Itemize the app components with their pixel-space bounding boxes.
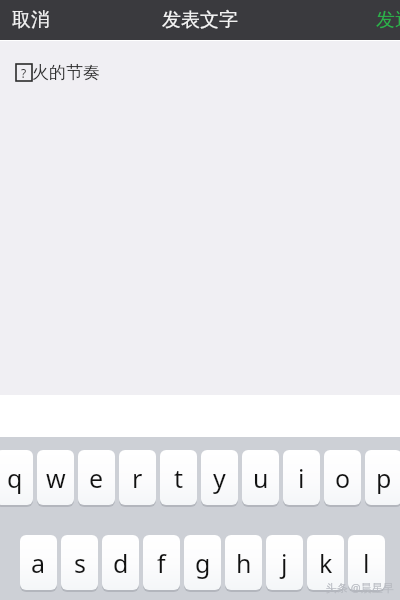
staticText: ?: [21, 65, 27, 81]
staticText: w: [46, 461, 66, 495]
staticText: 取消: [12, 8, 50, 32]
staticText: 发表文字: [162, 8, 238, 32]
button[interactable]: l: [348, 535, 385, 590]
staticText: o: [335, 461, 351, 495]
button[interactable]: k: [307, 535, 344, 590]
button[interactable]: q: [0, 450, 33, 505]
staticText: h: [236, 546, 252, 580]
staticText: e: [89, 461, 104, 495]
staticText: 头条 @晨星早: [326, 580, 394, 595]
staticText: g: [195, 546, 211, 580]
button[interactable]: p: [365, 450, 400, 505]
button[interactable]: g: [184, 535, 221, 590]
staticText: 火的节奏: [32, 62, 100, 83]
staticText: j: [281, 546, 288, 580]
button[interactable]: f: [143, 535, 180, 590]
staticText: 发送: [376, 8, 400, 32]
button[interactable]: s: [61, 535, 98, 590]
button[interactable]: ?: [0, 41, 400, 395]
button[interactable]: 取消: [0, 0, 62, 40]
button[interactable]: h: [225, 535, 262, 590]
staticText: d: [113, 546, 129, 580]
button[interactable]: t: [160, 450, 197, 505]
staticText: s: [74, 546, 86, 580]
button[interactable]: r: [119, 450, 156, 505]
staticText: f: [157, 546, 166, 580]
staticText: t: [174, 461, 184, 495]
button[interactable]: a: [20, 535, 57, 590]
staticText: u: [253, 461, 269, 495]
button[interactable]: w: [37, 450, 74, 505]
staticText: k: [319, 546, 333, 580]
button[interactable]: u: [242, 450, 279, 505]
staticText: q: [7, 461, 23, 495]
staticText: l: [363, 546, 370, 580]
button[interactable]: y: [201, 450, 238, 505]
staticText: i: [298, 461, 305, 495]
button[interactable]: 发送: [370, 0, 400, 40]
button[interactable]: o: [324, 450, 361, 505]
staticText: y: [213, 461, 226, 495]
button[interactable]: e: [78, 450, 115, 505]
button[interactable]: j: [266, 535, 303, 590]
staticText: p: [376, 461, 392, 495]
staticText: r: [132, 461, 143, 495]
staticText: a: [31, 546, 46, 580]
button[interactable]: d: [102, 535, 139, 590]
button[interactable]: i: [283, 450, 320, 505]
